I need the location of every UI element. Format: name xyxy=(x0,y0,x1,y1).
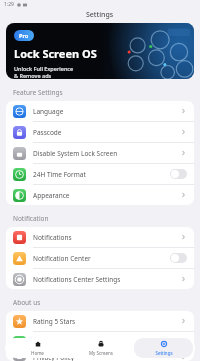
button[interactable]: Disable System Lock Screen xyxy=(6,143,194,163)
staticText: Feature Settings xyxy=(13,88,63,97)
staticText: Appearance xyxy=(33,191,70,200)
staticText: Passcode xyxy=(33,128,62,137)
button[interactable]: Home xyxy=(7,338,67,358)
button[interactable]: Settings xyxy=(134,338,193,358)
staticText: 1:29 xyxy=(4,1,14,8)
button[interactable]: Passcode xyxy=(6,122,194,142)
button[interactable]: Download Other Apps xyxy=(6,332,194,352)
staticText: About us xyxy=(13,298,41,307)
staticText: 24H Time Format xyxy=(33,170,86,179)
staticText: & Remove ads xyxy=(14,72,52,79)
staticText: Rating 5 Stars xyxy=(33,317,76,326)
staticText: Home xyxy=(31,350,44,356)
staticText: Download Other Apps xyxy=(33,338,101,347)
button[interactable]: My Screens xyxy=(71,338,130,358)
button[interactable]: 24H Time Format xyxy=(170,169,187,179)
button[interactable]: 24H Time Format xyxy=(6,164,194,184)
button[interactable]: Privacy Policy xyxy=(6,353,194,361)
button[interactable]: Rating 5 Stars xyxy=(6,311,194,331)
button[interactable]: Language xyxy=(6,101,194,121)
staticText: Disable System Lock Screen xyxy=(33,149,118,158)
button[interactable]: Notifications xyxy=(6,227,194,247)
button[interactable]: Notification Center xyxy=(6,248,194,268)
staticText: Notification Center xyxy=(33,254,91,263)
staticText: Notifications xyxy=(33,233,72,242)
button[interactable]: Notification Center xyxy=(170,253,187,263)
staticText: Pro xyxy=(19,32,29,39)
staticText: Notifications Center Settings xyxy=(33,275,121,284)
staticText: Settings xyxy=(86,10,114,20)
staticText: Lock Screen OS xyxy=(14,46,97,61)
staticText: My Screens xyxy=(89,350,113,356)
staticText: Unlock Full Experience xyxy=(14,65,74,72)
staticText: Settings xyxy=(155,350,173,356)
button[interactable]: Pro xyxy=(6,23,194,79)
button[interactable]: Appearance xyxy=(6,185,194,205)
staticText: Privacy Policy xyxy=(33,353,75,361)
staticText: Language xyxy=(33,107,64,116)
button[interactable]: Notifications Center Settings xyxy=(6,269,194,289)
staticText: Notification xyxy=(13,214,49,223)
